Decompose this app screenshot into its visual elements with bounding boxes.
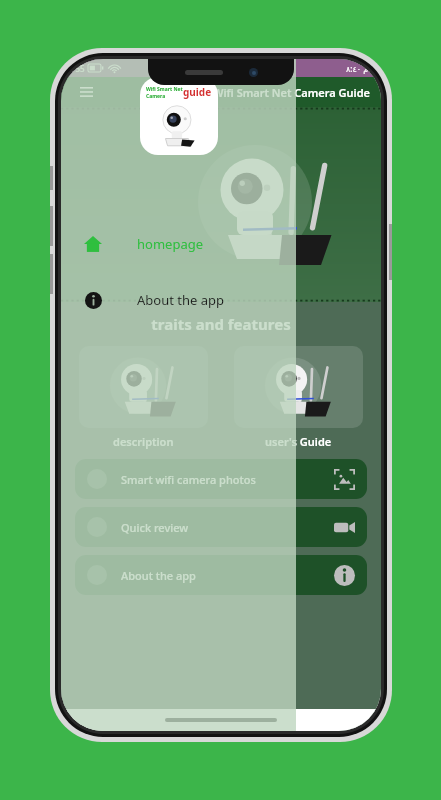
button[interactable]: Smart wifi camera photos xyxy=(75,459,367,499)
staticText: user's Guide xyxy=(265,434,332,449)
staticText: About the app xyxy=(121,568,196,583)
staticText: About the app xyxy=(137,291,224,309)
other: Photos xyxy=(334,469,355,490)
staticText: guide xyxy=(183,85,212,99)
staticText: Quick review xyxy=(121,520,189,535)
other: About xyxy=(334,565,355,586)
button[interactable]: App icon xyxy=(140,77,218,155)
button[interactable]: description xyxy=(79,346,208,449)
staticText: Wifi Smart Net Camera xyxy=(146,86,183,99)
button[interactable]: Quick review xyxy=(75,507,367,547)
staticText: Wifi Smart Net Camera Guide xyxy=(213,85,371,100)
staticText: description xyxy=(113,434,174,449)
button[interactable]: homepage xyxy=(61,227,296,261)
staticText: Smart wifi camera photos xyxy=(121,472,256,487)
button[interactable]: About the app xyxy=(61,283,296,317)
staticText: traits and features xyxy=(151,314,291,334)
button[interactable]: About the app xyxy=(75,555,367,595)
button[interactable]: user's Guide xyxy=(234,346,363,449)
staticText: ٬55 xyxy=(73,63,85,74)
staticText: م ٨:٤٠ xyxy=(346,63,369,74)
other: Video xyxy=(334,520,355,535)
button[interactable]: Open navigation drawer xyxy=(75,81,97,103)
staticText: homepage xyxy=(137,235,204,253)
